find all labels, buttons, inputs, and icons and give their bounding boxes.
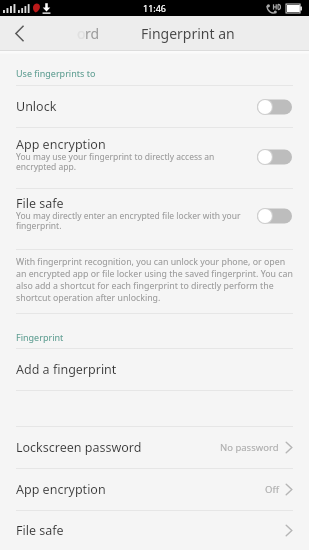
staticText: Off bbox=[265, 483, 279, 496]
staticText: o bbox=[77, 24, 86, 43]
staticText: File safe bbox=[16, 195, 64, 212]
staticText: You may use your fingerprint to directly… bbox=[16, 151, 251, 172]
staticText: rd bbox=[85, 24, 100, 43]
staticText: With fingerprint recognition, you can un… bbox=[16, 256, 293, 304]
button[interactable]: File safe bbox=[0, 189, 309, 249]
staticText: Unlock bbox=[16, 98, 57, 115]
button[interactable]: Add a fingerprint bbox=[0, 349, 309, 390]
staticText: App encryption bbox=[16, 136, 106, 153]
staticText: Fingerprint bbox=[16, 331, 64, 343]
button[interactable]: Unlock bbox=[0, 86, 309, 127]
button[interactable]: File safe bbox=[0, 511, 309, 550]
button[interactable]: Back bbox=[0, 16, 40, 50]
staticText: You may directly enter an encrypted file… bbox=[16, 210, 251, 231]
staticText: 11:46 bbox=[143, 2, 167, 14]
button[interactable]: Lockscreen password bbox=[0, 427, 309, 468]
staticText: Lockscreen password bbox=[16, 439, 142, 456]
button[interactable]: App encryption bbox=[0, 128, 309, 188]
staticText: App encryption bbox=[16, 481, 106, 498]
staticText: Add a fingerprint bbox=[16, 361, 117, 378]
button[interactable]: App encryption bbox=[0, 469, 309, 510]
staticText: Use fingerprints to bbox=[16, 67, 96, 79]
staticText: No password bbox=[220, 441, 279, 454]
staticText: Fingerprint an bbox=[141, 24, 235, 43]
staticText: File safe bbox=[16, 522, 64, 539]
